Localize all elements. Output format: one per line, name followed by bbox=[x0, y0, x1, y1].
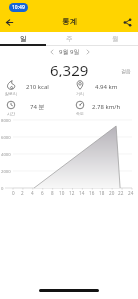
staticText: 4.94 km bbox=[95, 83, 118, 91]
staticText: 0 bbox=[12, 190, 15, 196]
staticText: 24 bbox=[128, 190, 134, 196]
staticText: 10:49 bbox=[12, 4, 25, 11]
staticText: 칼로리 bbox=[5, 91, 17, 96]
staticText: 시간 bbox=[7, 111, 15, 116]
staticText: 6 bbox=[41, 190, 44, 196]
staticText: 18 bbox=[99, 190, 105, 196]
staticText: 74 분 bbox=[30, 103, 45, 111]
staticText: 8000 bbox=[1, 118, 11, 124]
staticText: 속도 bbox=[76, 111, 84, 116]
staticText: 4000 bbox=[1, 152, 11, 158]
staticText: 일 bbox=[20, 35, 27, 43]
staticText: 20 bbox=[109, 190, 115, 196]
button[interactable]: 시간 bbox=[0, 99, 69, 119]
button[interactable]: 칼로리 bbox=[0, 79, 69, 99]
staticText: 22 bbox=[118, 190, 124, 196]
staticText: 걸음 bbox=[121, 68, 131, 74]
button[interactable]: 속도 bbox=[69, 99, 138, 119]
staticText: 통계 bbox=[62, 17, 77, 26]
staticText: 2.78 km/h bbox=[92, 103, 121, 111]
staticText: 6000 bbox=[1, 135, 11, 141]
staticText: 9월 9일 bbox=[59, 48, 80, 56]
staticText: 4 bbox=[31, 190, 34, 196]
button[interactable]: Back bbox=[1, 14, 18, 31]
button[interactable]: 일 bbox=[0, 32, 46, 46]
staticText: 2000 bbox=[1, 169, 11, 175]
staticText: 12 bbox=[69, 190, 75, 196]
button[interactable]: Share bbox=[119, 14, 136, 31]
staticText: 2 bbox=[21, 190, 24, 196]
staticText: 거리 bbox=[76, 91, 84, 96]
staticText: 월 bbox=[112, 35, 119, 43]
staticText: 6,329 bbox=[50, 60, 89, 77]
button[interactable]: 주 bbox=[46, 32, 92, 46]
staticText: 8 bbox=[51, 190, 54, 196]
staticText: 16 bbox=[89, 190, 95, 196]
button[interactable]: Previous day bbox=[46, 46, 57, 57]
button[interactable]: Next day bbox=[82, 46, 93, 57]
staticText: 210 kcal bbox=[26, 83, 49, 91]
button[interactable]: 월 bbox=[92, 32, 138, 46]
staticText: 0 bbox=[1, 186, 4, 192]
staticText: 주 bbox=[66, 35, 73, 43]
button[interactable]: 거리 bbox=[69, 79, 138, 99]
staticText: 10 bbox=[59, 190, 65, 196]
staticText: 14 bbox=[79, 190, 85, 196]
